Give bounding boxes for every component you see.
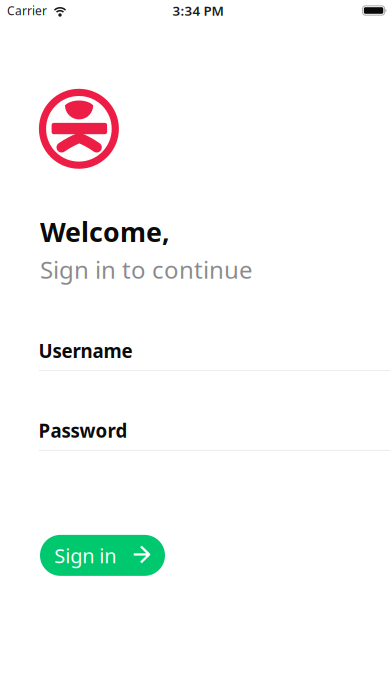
staticText: 3:34 PM [172, 2, 223, 19]
staticText: Carrier [7, 2, 47, 18]
staticText: Welcome, [40, 214, 170, 249]
staticText: Sign in [54, 542, 116, 569]
staticText: Username [38, 338, 132, 363]
staticText: Sign in to continue [40, 253, 253, 285]
staticText: Password [38, 418, 127, 443]
button[interactable]: Sign in [40, 535, 165, 576]
